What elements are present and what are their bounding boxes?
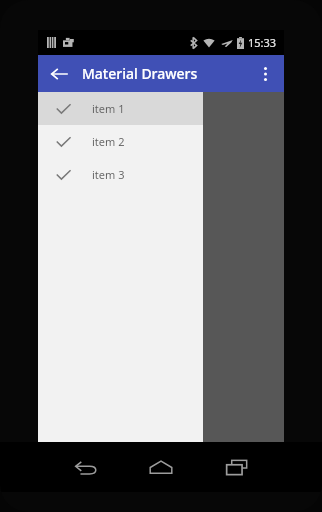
button[interactable]: Back	[59, 447, 111, 487]
staticText: item 2	[92, 134, 125, 149]
staticText: item 3	[92, 167, 125, 182]
staticText: Material Drawers	[82, 64, 198, 83]
button[interactable]: Recent apps	[211, 447, 263, 487]
button[interactable]: item 1	[38, 92, 203, 125]
button[interactable]: Navigate up	[43, 58, 75, 90]
button[interactable]: Home	[135, 447, 187, 487]
staticText: 15:33	[248, 35, 277, 50]
button[interactable]: More options	[251, 60, 279, 88]
button[interactable]: item 2	[38, 125, 203, 158]
staticText: item 1	[92, 101, 125, 116]
button[interactable]: item 3	[38, 158, 203, 191]
